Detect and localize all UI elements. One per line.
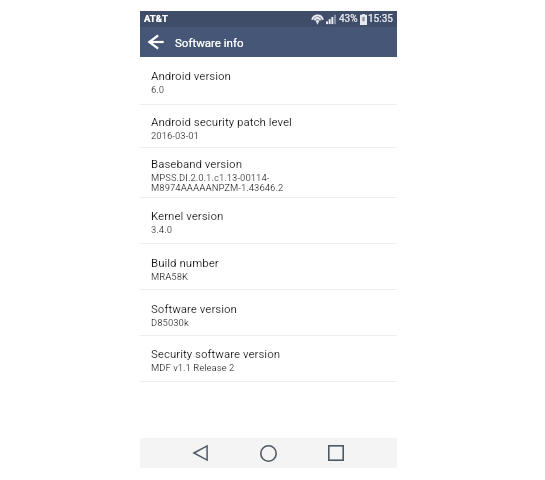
staticText: M8974AAAAANPZM-1.43646.2 xyxy=(151,182,284,193)
staticText: 15:35 xyxy=(368,13,393,25)
staticText: Security software version xyxy=(151,347,281,360)
staticText: AT&T xyxy=(144,13,168,24)
staticText: Android version xyxy=(151,69,231,82)
staticText: 3.4.0 xyxy=(151,224,173,235)
button[interactable]: Android version xyxy=(140,57,397,105)
staticText: 43% xyxy=(339,13,358,25)
button[interactable]: Recent apps xyxy=(302,438,370,468)
staticText: Android security patch level xyxy=(151,115,292,128)
staticText: Kernel version xyxy=(151,209,224,222)
button[interactable]: Kernel version xyxy=(140,198,397,244)
staticText: Baseband version xyxy=(151,157,242,170)
staticText: Software version xyxy=(151,302,237,315)
button[interactable]: Software version xyxy=(140,290,397,336)
staticText: MDF v1.1 Release 2 xyxy=(151,362,235,373)
button[interactable]: Baseband version xyxy=(140,148,397,198)
button[interactable]: Home xyxy=(234,438,302,468)
staticText: Software info xyxy=(175,36,244,49)
button[interactable]: Navigate up xyxy=(140,27,172,57)
button[interactable]: Back xyxy=(166,438,234,468)
staticText: MRA58K xyxy=(151,271,188,282)
staticText: D85030k xyxy=(151,317,189,328)
staticText: Build number xyxy=(151,256,219,269)
button[interactable]: Security software version xyxy=(140,336,397,382)
staticText: 2016-03-01 xyxy=(151,130,199,141)
button[interactable]: Android security patch level xyxy=(140,105,397,148)
button[interactable]: Build number xyxy=(140,244,397,290)
staticText: 6.0 xyxy=(151,84,165,95)
staticText: MPSS.DI.2.0.1.c1.13-00114- xyxy=(151,172,270,183)
